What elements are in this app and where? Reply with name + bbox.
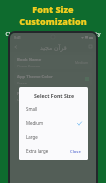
staticText: Change text size for better readability: [0, 30, 106, 37]
staticText: Medium: [17, 98, 31, 101]
staticText: Book Name: [17, 57, 42, 63]
button[interactable]: Settings: [86, 42, 95, 51]
staticText: Quran Kareem: [17, 64, 41, 67]
staticText: Font Size Customization: [0, 3, 106, 27]
button[interactable]: App Theme Color: [14, 72, 92, 86]
staticText: Medium: [75, 60, 89, 65]
staticText: Large: [26, 134, 38, 140]
staticText: Select Font Size: [26, 92, 82, 99]
button[interactable]: Small: [26, 106, 82, 112]
button[interactable]: Back: [11, 42, 20, 51]
staticText: Small: [26, 106, 38, 112]
button[interactable]: Close: [69, 148, 82, 156]
button[interactable]: Font Size: [14, 89, 92, 103]
staticText: Extra large: [26, 148, 49, 154]
button[interactable]: Book Name: [14, 55, 92, 69]
staticText: 9:41: [14, 35, 21, 40]
button[interactable]: Medium: [26, 120, 82, 126]
staticText: Medium: [26, 120, 44, 126]
staticText: Close: [70, 149, 81, 155]
button[interactable]: Large: [26, 134, 82, 140]
staticText: Green: [17, 81, 27, 84]
staticText: Font Size: [17, 91, 36, 97]
button[interactable]: Extra large: [26, 148, 82, 154]
staticText: App Theme Color: [17, 74, 53, 80]
staticText: قرآن مجید: [40, 43, 67, 51]
